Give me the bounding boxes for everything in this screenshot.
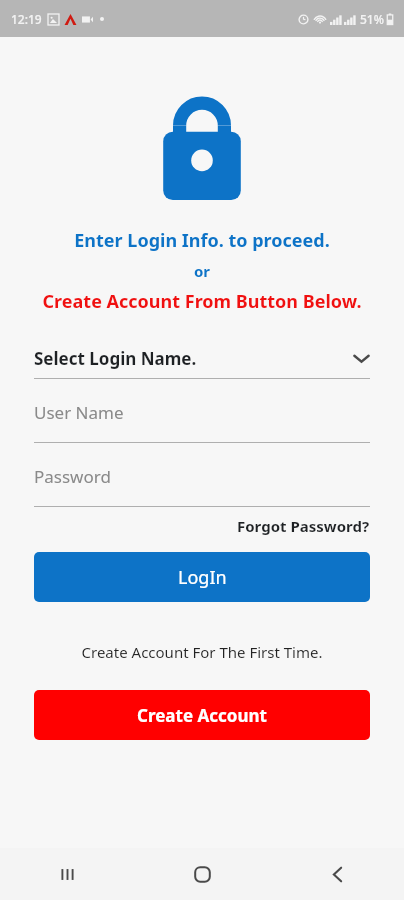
staticText: Create Account [137, 704, 267, 727]
staticText: 51% [360, 11, 384, 27]
button[interactable]: Home [173, 848, 231, 900]
staticText: Create Account From Button Below. [0, 289, 404, 314]
button[interactable]: Create Account [34, 690, 370, 740]
staticText: Select Login Name. [34, 347, 353, 370]
button[interactable]: Recent apps [38, 848, 96, 900]
staticText: LogIn [178, 565, 227, 590]
staticText: Enter Login Info. to proceed. [0, 228, 404, 253]
button[interactable]: Select Login Name. [34, 347, 370, 378]
staticText: 12:19 [11, 11, 42, 27]
staticText: Forgot Password? [237, 516, 370, 536]
button[interactable]: Forgot Password? [237, 516, 370, 536]
staticText: Create Account For The First Time. [0, 642, 404, 662]
button[interactable]: LogIn [34, 552, 370, 602]
staticText: User Name [34, 401, 124, 424]
button[interactable]: User Name [34, 401, 370, 424]
button[interactable]: Back [308, 848, 366, 900]
button[interactable]: Password [34, 465, 370, 488]
staticText: Password [34, 465, 111, 488]
staticText: or [0, 261, 404, 281]
